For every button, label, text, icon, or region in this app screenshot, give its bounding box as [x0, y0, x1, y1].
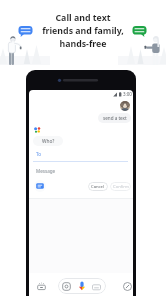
button[interactable]: Lens [62, 282, 71, 291]
button[interactable]: Confirm [110, 182, 131, 191]
staticText: send a text [103, 115, 127, 121]
staticText: To [36, 151, 42, 157]
button[interactable]: Keyboard [34, 279, 49, 294]
staticText: Cancel [91, 184, 105, 190]
button[interactable]: Keyboard [92, 283, 101, 292]
button[interactable]: Keyboard [34, 180, 46, 192]
staticText: Confirm [113, 184, 129, 190]
staticText: Message [36, 168, 56, 174]
staticText: Call and text friends and family, hands-… [42, 12, 124, 50]
button[interactable]: Account [120, 101, 130, 111]
staticText: Who? [42, 138, 55, 145]
button[interactable]: Voice search [77, 281, 87, 291]
button[interactable]: Cancel [88, 182, 108, 191]
button[interactable]: Explore [120, 279, 133, 294]
staticText: 3:00 [123, 91, 132, 97]
